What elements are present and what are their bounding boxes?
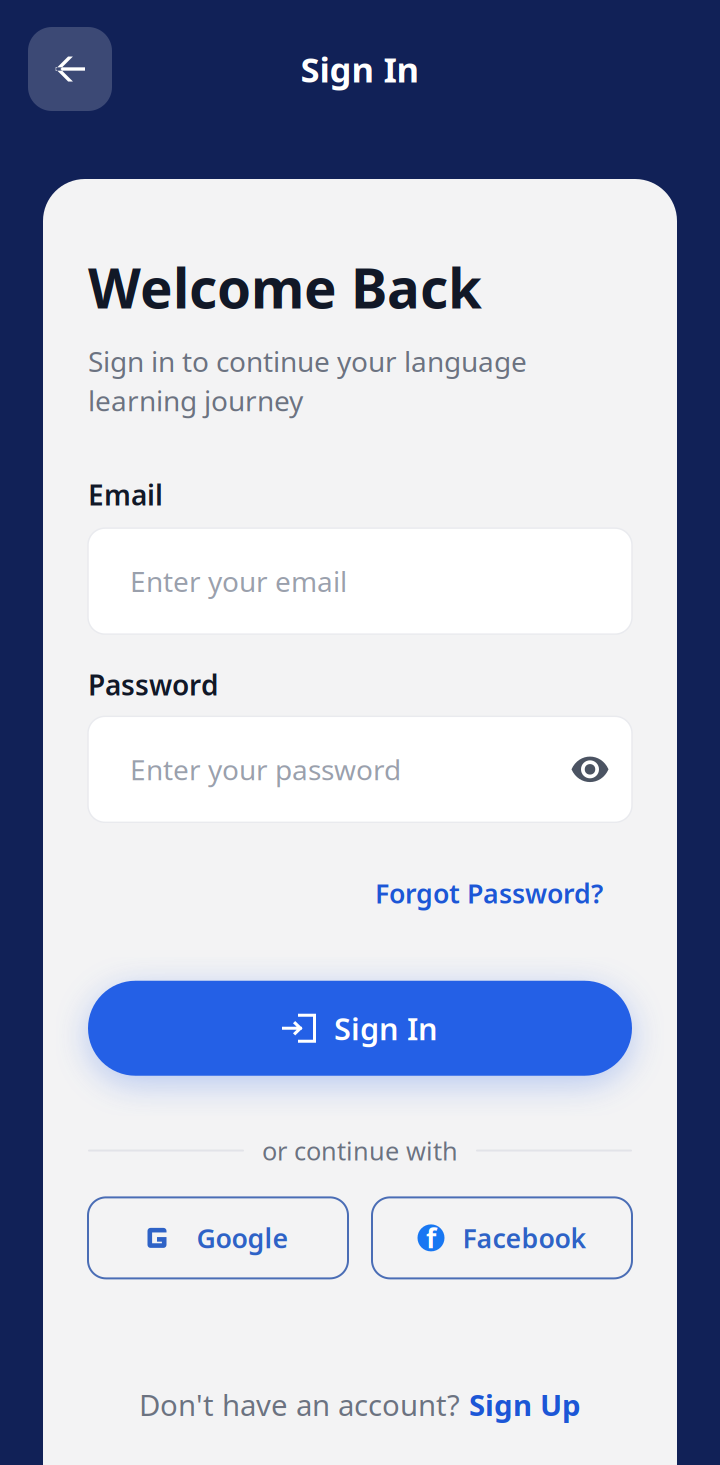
staticText: Don't have an account? xyxy=(139,1385,460,1424)
button[interactable]: Forgot Password? xyxy=(375,875,603,911)
staticText: Email xyxy=(88,476,163,513)
button[interactable]: Don't have an account? xyxy=(139,1385,581,1424)
button[interactable]: f xyxy=(372,1197,632,1278)
staticText: Sign In xyxy=(300,46,419,92)
staticText: Enter your email xyxy=(130,563,347,600)
staticText: Welcome Back xyxy=(88,251,482,324)
staticText: Enter your password xyxy=(130,751,401,788)
staticText: f xyxy=(426,1220,436,1256)
button[interactable]: Show password xyxy=(571,756,609,783)
staticText: Sign In xyxy=(334,1008,438,1049)
button[interactable]: Back xyxy=(28,27,112,111)
staticText: learning journey xyxy=(88,382,303,419)
button[interactable]: Sign In xyxy=(88,981,632,1076)
staticText: Google xyxy=(196,1220,288,1256)
button[interactable]: Google xyxy=(88,1197,348,1278)
staticText: Sign Up xyxy=(469,1385,581,1424)
staticText: Forgot Password? xyxy=(375,875,603,911)
staticText: Facebook xyxy=(462,1220,586,1256)
staticText: Password xyxy=(88,666,219,703)
staticText: or continue with xyxy=(262,1134,458,1167)
staticText: Sign in to continue your language xyxy=(88,343,527,380)
